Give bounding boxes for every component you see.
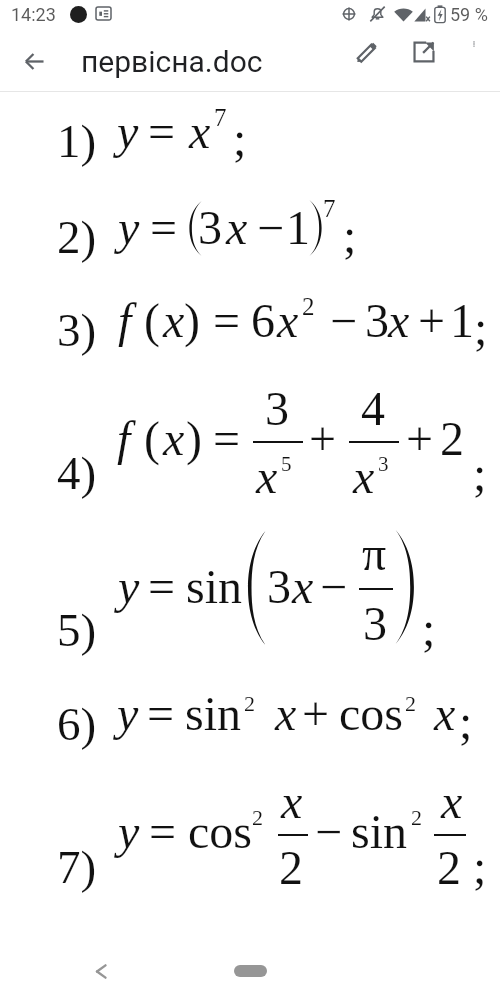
staticText: x [189, 105, 211, 158]
staticText: ; [473, 840, 487, 893]
staticText: 2 [302, 293, 315, 321]
staticText: sin [185, 687, 242, 740]
staticText: ) [184, 294, 200, 347]
staticText: 1 [286, 201, 310, 254]
staticText: 2) [57, 211, 97, 263]
staticText: 2 [437, 841, 461, 894]
staticText: первісна.doc [81, 44, 263, 79]
staticText: ; [474, 301, 488, 354]
staticText: y [118, 805, 140, 858]
staticText: 7 [214, 104, 227, 132]
staticText: 6) [57, 698, 97, 750]
staticText: x [281, 775, 303, 828]
staticText: cos [339, 687, 403, 740]
staticText: 2 [411, 805, 422, 829]
staticText: 14:23 [11, 4, 56, 25]
staticText: − [315, 805, 343, 858]
staticText: y [118, 560, 140, 613]
staticText: x [226, 201, 248, 254]
button[interactable]: Navigate up [6, 33, 62, 89]
button[interactable]: Open in new window [400, 28, 448, 76]
staticText: 5) [57, 604, 97, 656]
staticText: 3) [57, 304, 97, 356]
button[interactable]: More options [452, 28, 496, 72]
staticText: ; [473, 447, 487, 500]
staticText: + [406, 412, 434, 465]
staticText: ; [343, 209, 357, 262]
staticText: − [330, 294, 358, 347]
staticText: − [257, 201, 285, 254]
staticText: ( [144, 412, 160, 465]
staticText: x [434, 687, 456, 740]
staticText: cos [188, 805, 252, 858]
staticText: x [163, 294, 185, 347]
staticText: = [148, 105, 176, 158]
staticText: 4) [57, 447, 97, 499]
staticText: = [150, 201, 178, 254]
staticText: 2 [252, 805, 263, 829]
staticText: 7 [323, 195, 336, 223]
staticText: = [213, 294, 241, 347]
staticText: x [441, 775, 463, 828]
staticText: 2 [440, 412, 464, 465]
staticText: 3 [365, 294, 389, 347]
staticText: x [256, 450, 278, 503]
staticText: x [292, 560, 314, 613]
staticText: f [118, 294, 132, 347]
staticText: y [118, 201, 140, 254]
staticText: 3 [363, 597, 387, 650]
staticText: y [117, 105, 139, 158]
staticText: + [302, 687, 330, 740]
staticText: 4 [361, 382, 385, 435]
button[interactable]: Home [234, 965, 267, 977]
staticText: 5 [281, 452, 292, 475]
staticText: x [275, 687, 297, 740]
staticText: sin [186, 560, 243, 613]
staticText: − [320, 560, 348, 613]
staticText: ; [233, 112, 247, 165]
staticText: ) [186, 412, 202, 465]
staticText: + [418, 294, 446, 347]
staticText: ( [144, 294, 160, 347]
staticText: ; [459, 695, 473, 748]
staticText: 3 [198, 201, 222, 254]
staticText: = [149, 805, 177, 858]
button[interactable]: Back [81, 951, 121, 991]
staticText: 59 % [450, 4, 488, 25]
staticText: π [362, 527, 387, 580]
staticText: 2 [244, 691, 255, 715]
staticText: x [388, 294, 410, 347]
staticText: 1) [57, 115, 97, 167]
staticText: = [147, 687, 175, 740]
staticText: x [163, 412, 185, 465]
staticText: 3 [378, 452, 389, 475]
staticText: 3 [267, 560, 291, 613]
staticText: = [148, 560, 176, 613]
staticText: 1 [450, 294, 474, 347]
staticText: x [277, 294, 299, 347]
staticText: = [213, 412, 241, 465]
staticText: sin [351, 805, 408, 858]
staticText: f [117, 412, 131, 465]
staticText: x [353, 450, 375, 503]
staticText: 3 [265, 382, 289, 435]
staticText: + [309, 412, 337, 465]
button[interactable]: Edit [343, 28, 391, 76]
staticText: ; [422, 602, 436, 655]
staticText: y [117, 687, 139, 740]
staticText: 2 [405, 691, 416, 715]
staticText: 6 [251, 294, 275, 347]
staticText: 2 [279, 841, 303, 894]
staticText: 7) [57, 841, 97, 893]
